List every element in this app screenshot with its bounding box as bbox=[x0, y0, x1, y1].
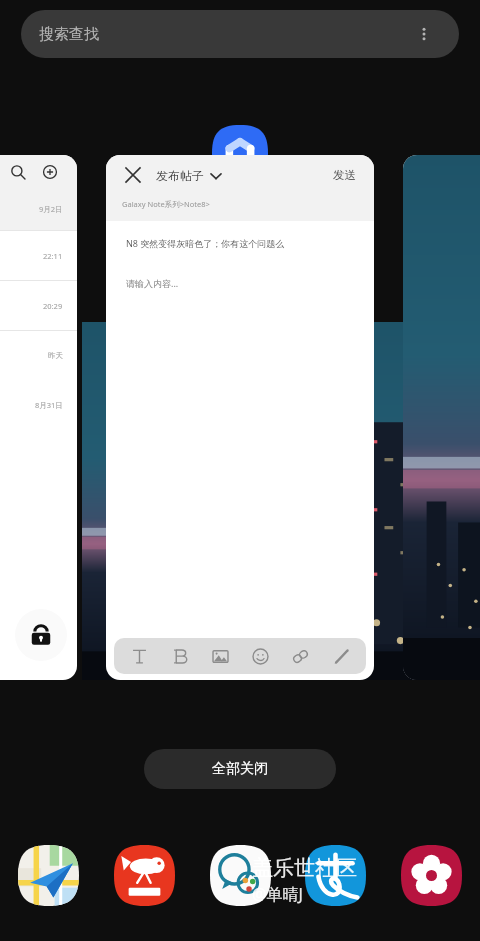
staticText: 搜索查找 bbox=[39, 25, 99, 44]
button[interactable]: JD bbox=[114, 845, 175, 906]
staticText: 发送 bbox=[333, 168, 356, 182]
button[interactable]: Messaging bbox=[210, 845, 271, 906]
button[interactable]: Search bbox=[0, 155, 77, 680]
button[interactable]: Community bbox=[401, 845, 462, 906]
staticText: 昨天 bbox=[48, 351, 63, 360]
button[interactable]: Add bbox=[37, 159, 63, 185]
button[interactable]: More options bbox=[407, 17, 441, 51]
button[interactable]: Draw bbox=[326, 641, 356, 671]
button[interactable]: Alipay bbox=[305, 845, 366, 906]
staticText: N8 突然变得灰暗色了；你有这个问题么 bbox=[126, 237, 285, 249]
button[interactable]: Insert link bbox=[285, 641, 315, 671]
button[interactable]: 全部关闭 bbox=[144, 749, 336, 789]
button[interactable]: 发送 bbox=[329, 164, 360, 186]
button[interactable]: App icon bbox=[212, 125, 268, 181]
staticText: 盖乐世社区 bbox=[252, 855, 357, 881]
button[interactable]: 请输入内容... bbox=[114, 265, 366, 632]
button[interactable]: Insert image bbox=[205, 641, 235, 671]
button[interactable]: Close bbox=[106, 155, 374, 680]
staticText: 全部关闭 bbox=[212, 760, 268, 778]
button[interactable]: 昨天 bbox=[0, 331, 77, 380]
button[interactable]: Search bbox=[5, 159, 31, 185]
staticText: 请输入内容... bbox=[126, 277, 179, 289]
staticText: 22:11 bbox=[43, 251, 63, 261]
button[interactable]: 22:11 bbox=[0, 231, 77, 280]
button[interactable]: Close bbox=[120, 162, 146, 188]
staticText: 发布帖子 bbox=[156, 168, 204, 183]
button[interactable]: Text style bbox=[124, 641, 154, 671]
button[interactable]: 8月31日 bbox=[0, 380, 77, 429]
button[interactable]: 发布帖子 bbox=[156, 168, 222, 183]
staticText: 20:29 bbox=[43, 301, 63, 311]
button[interactable]: Lock app bbox=[15, 609, 67, 661]
button[interactable]: Maps bbox=[18, 845, 79, 906]
staticText: Galaxy Note系列>Note8> bbox=[122, 199, 210, 209]
button[interactable] bbox=[403, 155, 480, 680]
button[interactable]: 搜索查找 bbox=[21, 10, 459, 58]
staticText: @单晴J bbox=[252, 883, 303, 905]
staticText: 9月2日 bbox=[39, 204, 63, 214]
button[interactable]: N8 突然变得灰暗色了；你有这个问题么 bbox=[114, 225, 366, 261]
button[interactable]: 9月2日 bbox=[0, 188, 77, 230]
button[interactable]: Insert emoji bbox=[245, 641, 275, 671]
button[interactable]: 20:29 bbox=[0, 281, 77, 330]
button[interactable]: Bold bbox=[165, 641, 195, 671]
staticText: 8月31日 bbox=[35, 400, 63, 410]
